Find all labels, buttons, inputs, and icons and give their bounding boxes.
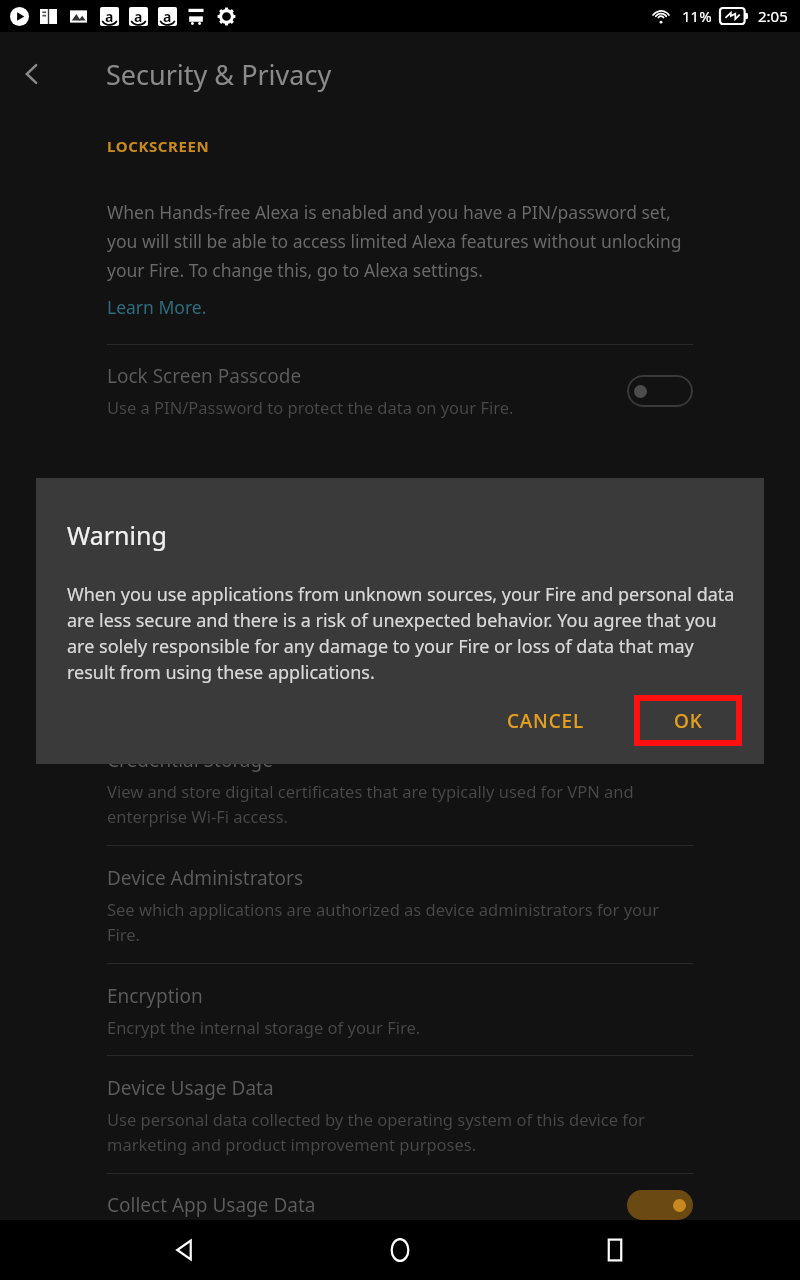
staticText: Warning — [67, 518, 167, 552]
button[interactable]: Lock Screen Passcode — [107, 345, 693, 432]
staticText: Encryption — [107, 983, 203, 1009]
staticText: When Hands-free Alexa is enabled and you… — [107, 200, 693, 282]
staticText: a — [105, 7, 114, 26]
button[interactable]: Collect App Usage Data — [107, 1174, 693, 1220]
staticText: See which applications are authorized as… — [107, 898, 693, 946]
staticText: Encrypt the internal storage of your Fir… — [107, 1016, 421, 1038]
button[interactable]: Back — [0, 42, 64, 106]
staticText: View and store digital certificates that… — [107, 780, 693, 828]
staticText: OK — [674, 708, 703, 734]
staticText: 2:05 — [758, 6, 788, 26]
staticText: Security & Privacy — [106, 56, 332, 93]
button[interactable]: Credential Storage — [107, 728, 693, 845]
button[interactable]: Encryption — [107, 964, 693, 1055]
staticText: 11% — [682, 6, 712, 26]
button[interactable]: Learn More. — [107, 295, 207, 319]
button[interactable]: CANCEL — [491, 698, 600, 744]
staticText: Lock Screen Passcode — [107, 363, 302, 389]
button[interactable]: Recent apps — [585, 1220, 645, 1280]
button[interactable]: Back — [155, 1220, 215, 1280]
staticText: Use personal data collected by the opera… — [107, 1108, 693, 1156]
staticText: Device Administrators — [107, 865, 304, 891]
staticText: Credential Storage — [107, 747, 273, 773]
staticText: CANCEL — [507, 708, 584, 734]
staticText: Collect App Usage Data — [107, 1192, 627, 1218]
staticText: Device Usage Data — [107, 1075, 274, 1101]
button[interactable]: Device Usage Data — [107, 1056, 693, 1173]
staticText: LOCKSCREEN — [107, 136, 210, 156]
staticText: a — [163, 7, 172, 26]
button[interactable]: Device Administrators — [107, 846, 693, 963]
staticText: Learn More. — [107, 295, 207, 319]
staticText: a — [134, 7, 143, 26]
button[interactable]: Home — [370, 1220, 430, 1280]
staticText: When you use applications from unknown s… — [67, 582, 744, 684]
button[interactable]: OK — [634, 695, 742, 746]
staticText: Use a PIN/Password to protect the data o… — [107, 396, 514, 418]
